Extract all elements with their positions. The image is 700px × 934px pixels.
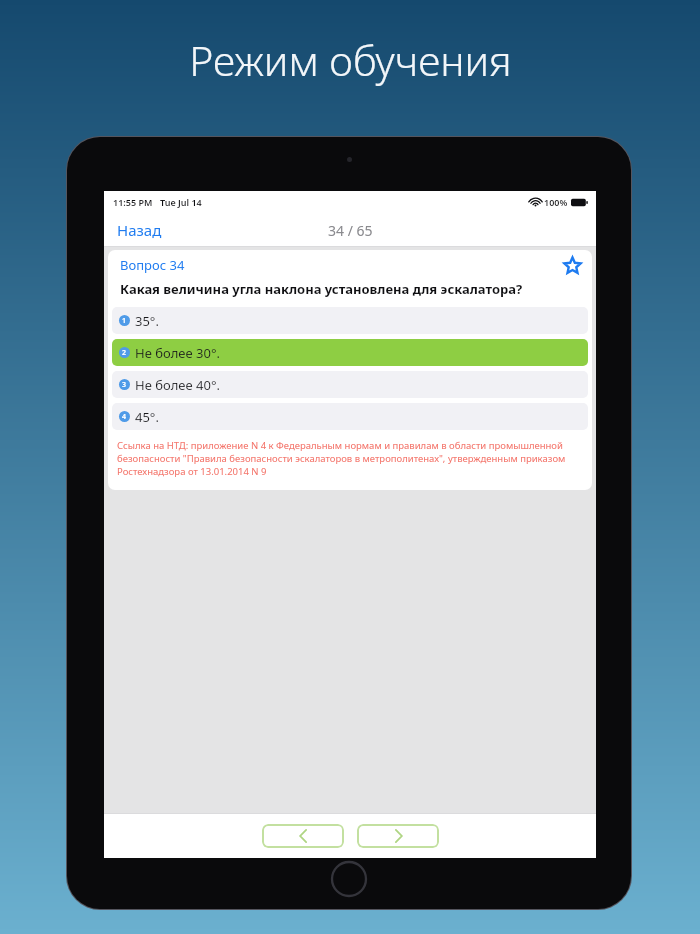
staticText: 4 <box>122 412 127 422</box>
staticText: Ссылка на НТД: приложение N 4 к Федераль… <box>117 439 583 478</box>
staticText: 1 <box>122 316 127 326</box>
staticText: Tue Jul 14 <box>160 196 202 208</box>
staticText: Назад <box>117 220 162 240</box>
other: Home <box>330 860 368 898</box>
staticText: 3 <box>122 380 127 390</box>
staticText: Режим обучения <box>189 32 512 88</box>
button[interactable]: Add to favorites <box>561 254 583 276</box>
staticText: 45°. <box>135 408 159 426</box>
staticText: Не более 40°. <box>135 376 220 394</box>
staticText: 35°. <box>135 312 159 330</box>
staticText: 2 <box>122 348 127 358</box>
staticText: 11:55 PM <box>113 196 153 208</box>
staticText: Не более 30°. <box>135 344 220 362</box>
button[interactable]: 1 <box>112 307 588 334</box>
button[interactable]: 3 <box>112 371 588 398</box>
staticText: Вопрос 34 <box>120 256 185 274</box>
staticText: 34 / 65 <box>328 221 373 240</box>
button[interactable]: 2 <box>112 339 588 366</box>
button[interactable]: 4 <box>112 403 588 430</box>
button[interactable]: Previous question <box>262 824 344 848</box>
staticText: 100% <box>544 196 568 208</box>
staticText: Какая величина угла наклона установлена … <box>120 280 523 298</box>
button[interactable]: Назад <box>104 214 175 246</box>
button[interactable]: Next question <box>357 824 439 848</box>
